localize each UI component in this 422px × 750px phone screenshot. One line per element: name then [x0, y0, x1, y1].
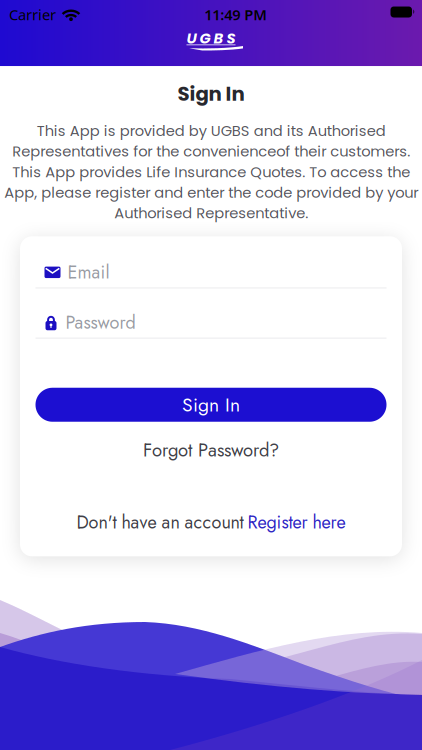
staticText: Forgot Password?: [143, 437, 279, 463]
staticText: 11:49 PM: [204, 5, 267, 24]
button[interactable]: Don't have an account: [35, 509, 386, 535]
button[interactable]: Forgot Password?: [35, 437, 386, 463]
staticText: Sign In: [182, 391, 240, 419]
staticText: Sign In: [177, 80, 244, 108]
button[interactable]: Password: [35, 309, 386, 339]
button[interactable]: U G B S: [182, 25, 240, 66]
staticText: U G B S: [186, 28, 235, 48]
staticText: This App is provided by UGBS and its Aut…: [4, 121, 418, 223]
staticText: Don't have an account: [76, 509, 243, 535]
staticText: Register here: [247, 509, 345, 535]
button[interactable]: Email: [35, 259, 386, 288]
staticText: Email: [67, 259, 109, 285]
button[interactable]: Sign In: [35, 388, 386, 422]
staticText: Password: [65, 309, 135, 335]
staticText: Carrier: [9, 5, 56, 24]
